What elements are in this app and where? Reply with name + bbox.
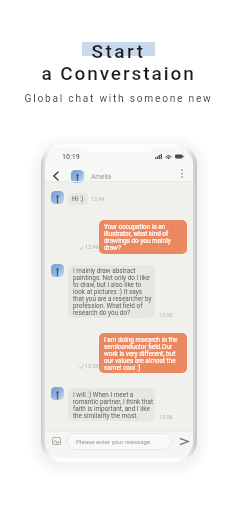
- staticText: Please enter your message: [76, 438, 151, 445]
- staticText: Start: [0, 40, 237, 62]
- staticText: Global chat with someone new: [0, 93, 237, 105]
- staticText: I will :) When I meet a romantic partner…: [73, 391, 153, 419]
- staticText: Your occupation is an illustrator, what …: [104, 223, 182, 251]
- staticText: 12:56: [159, 414, 173, 420]
- button[interactable]: Please enter your message: [67, 433, 172, 450]
- button[interactable]: Send: [176, 434, 191, 449]
- button[interactable]: I am doing research in the semiconductor…: [99, 333, 187, 373]
- staticText: I am doing research in the semiconductor…: [104, 336, 182, 371]
- button[interactable]: Hi :): [68, 193, 88, 205]
- staticText: 10:19: [62, 153, 80, 161]
- button[interactable]: More options: [175, 166, 189, 180]
- staticText: 12:55: [85, 363, 99, 369]
- staticText: I mainly draw abstract paintings. Not on…: [73, 267, 153, 316]
- staticText: 12:52: [159, 312, 173, 318]
- button[interactable]: Back: [48, 169, 62, 183]
- staticText: 12:49: [91, 196, 105, 202]
- staticText: Hi :): [72, 195, 84, 203]
- button[interactable]: I mainly draw abstract paintings. Not on…: [68, 265, 155, 318]
- button[interactable]: Attach image: [48, 433, 64, 449]
- button[interactable]: I will :) When I meet a romantic partner…: [68, 388, 155, 421]
- button[interactable]: Your occupation is an illustrator, what …: [99, 220, 187, 254]
- staticText: 12:49: [85, 244, 99, 250]
- staticText: Amelia: [91, 173, 112, 181]
- staticText: a Converstaion: [0, 62, 237, 84]
